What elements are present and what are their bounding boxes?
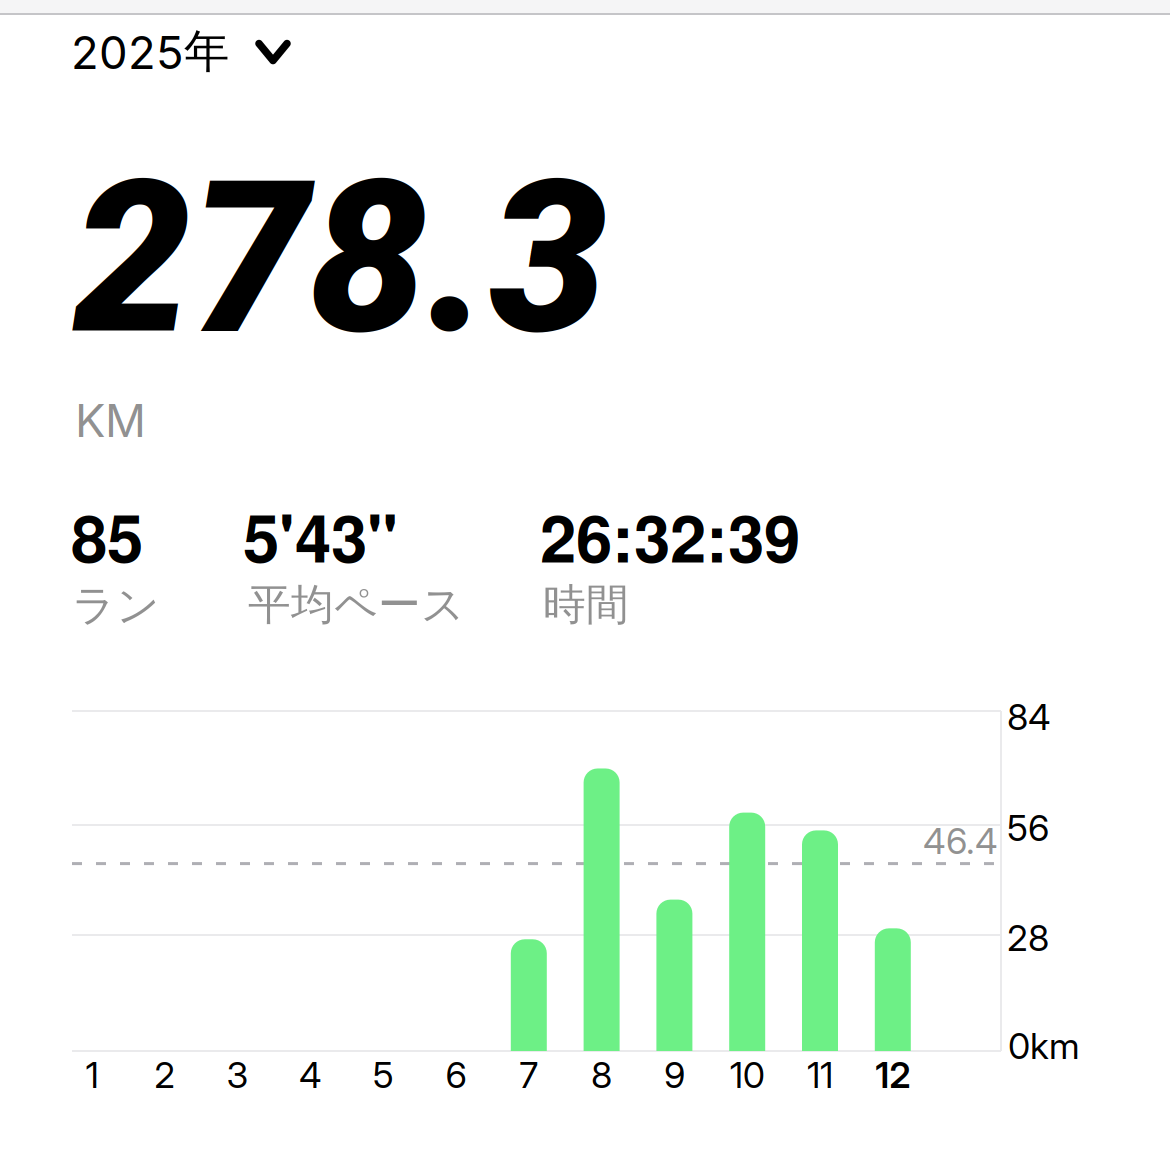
staticText: 0km (1008, 1024, 1080, 1068)
staticText: KM (75, 393, 146, 448)
staticText: 3 (227, 1053, 249, 1097)
staticText: 12 (875, 1053, 910, 1097)
staticText: 5 (373, 1053, 394, 1097)
staticText: 1 (85, 1053, 98, 1097)
staticText: 84 (1007, 695, 1051, 739)
staticText: 10 (730, 1053, 765, 1097)
staticText: 時間 (543, 578, 629, 632)
staticText: 9 (664, 1053, 685, 1097)
staticText: 5'43" (243, 489, 398, 583)
staticText: 278.3 (73, 135, 607, 382)
staticText: 2 (154, 1053, 175, 1097)
staticText: ラン (72, 579, 160, 633)
staticText: 6 (445, 1053, 466, 1097)
staticText: 46.4 (923, 819, 998, 863)
staticText: 26:32:39 (540, 489, 800, 583)
staticText: 11 (807, 1053, 833, 1097)
staticText: 28 (1007, 916, 1049, 960)
button[interactable]: 2025年 (71, 23, 291, 80)
staticText: 56 (1007, 806, 1049, 850)
staticText: 4 (299, 1053, 322, 1097)
staticText: 8 (591, 1053, 612, 1097)
staticText: 7 (519, 1053, 538, 1097)
staticText: 85 (71, 489, 143, 583)
staticText: 2025年 (71, 23, 229, 80)
staticText: 平均ペース (248, 578, 465, 632)
